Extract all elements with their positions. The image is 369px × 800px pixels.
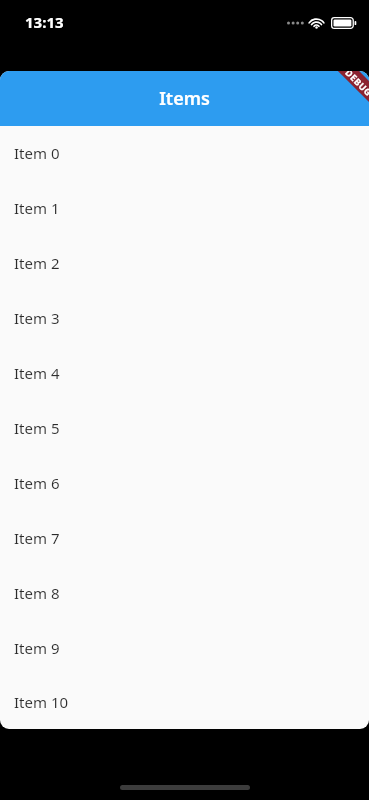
staticText: 13:13 — [25, 12, 64, 32]
button[interactable]: Item 5 — [0, 401, 369, 456]
button[interactable]: Item 9 — [0, 621, 369, 676]
button[interactable]: Item 4 — [0, 346, 369, 401]
button[interactable]: Item 1 — [0, 181, 369, 236]
staticText: Items — [159, 86, 210, 111]
staticText: Item 6 — [14, 473, 60, 493]
staticText: Item 10 — [14, 692, 69, 712]
button[interactable]: Item 8 — [0, 566, 369, 621]
staticText: Item 4 — [14, 363, 60, 383]
other: Home indicator — [120, 785, 250, 790]
staticText: Item 5 — [14, 418, 60, 438]
button[interactable]: Item 10 — [0, 676, 369, 729]
staticText: Item 9 — [14, 638, 60, 658]
button[interactable]: Items — [0, 71, 369, 126]
staticText: Item 0 — [14, 143, 60, 163]
button[interactable]: Item 0 — [0, 126, 369, 181]
staticText: Item 7 — [14, 528, 60, 548]
staticText: DEBUG — [343, 71, 369, 98]
button[interactable]: Item 3 — [0, 291, 369, 346]
staticText: Item 8 — [14, 583, 60, 603]
staticText: Item 2 — [14, 253, 60, 273]
button[interactable]: Item 6 — [0, 456, 369, 511]
staticText: Item 3 — [14, 308, 60, 328]
staticText: Item 1 — [14, 198, 60, 218]
button[interactable]: Item 7 — [0, 511, 369, 566]
button[interactable]: Item 2 — [0, 236, 369, 291]
